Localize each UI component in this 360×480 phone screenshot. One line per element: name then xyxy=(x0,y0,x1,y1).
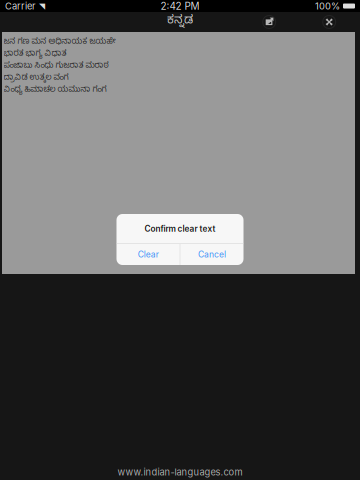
staticText: ಜನ ಗಣ ಮನ ಅಧಿನಾಯಕ ಜಯಹೇ xyxy=(4,37,116,48)
staticText: ಪಂಜಾಬು ಸಿಂಧು ಗುಜರಾತ ಮರಾಠ xyxy=(4,61,109,72)
staticText: www.indian-languages.com xyxy=(117,466,242,478)
button[interactable]: Share xyxy=(257,12,281,32)
staticText: Carrier xyxy=(5,0,36,12)
button[interactable]: Clear xyxy=(116,244,180,265)
staticText: ದ್ರಾವಿಡ ಉತ್ಕಲ ವಂಗ xyxy=(4,73,69,84)
staticText: ◥ xyxy=(39,1,45,11)
staticText: ವಿಂಧ್ಯ ಹಿಮಾಚಲ ಯಮುನಾ ಗಂಗ xyxy=(4,85,107,96)
staticText: 100% xyxy=(315,0,340,12)
button[interactable]: Close xyxy=(317,12,341,32)
staticText: Confirm clear text xyxy=(144,224,215,234)
button[interactable]: Cancel xyxy=(180,244,243,265)
staticText: ಭಾರತ ಭಾಗ್ಯ ವಿಧಾತ xyxy=(4,49,67,60)
staticText: Clear xyxy=(138,249,159,260)
staticText: Cancel xyxy=(198,249,226,260)
staticText: ಕನ್ನಡ xyxy=(167,14,193,30)
staticText: 2:42 PM xyxy=(160,0,199,12)
